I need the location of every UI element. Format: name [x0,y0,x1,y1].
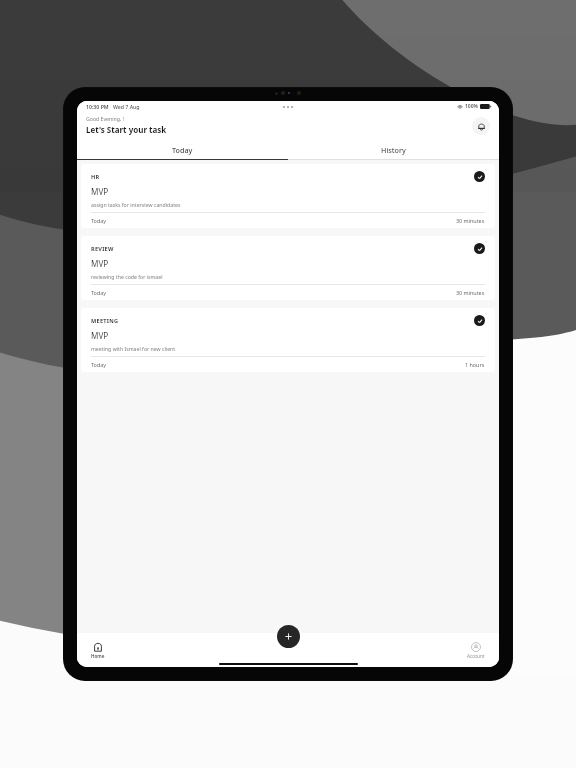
staticText: assign tasks for interview candidates [91,201,181,208]
button[interactable]: MEETING [81,308,495,372]
button[interactable]: HR [81,164,495,228]
button[interactable]: History [288,139,499,160]
staticText: meeting with Ismael for new client [91,345,176,352]
staticText: Today [172,145,193,155]
button[interactable]: Mark complete [474,171,485,182]
staticText: Home [91,653,105,659]
staticText: MEETING [91,317,119,325]
button[interactable]: Today [77,139,288,160]
staticText: 100% [465,103,478,110]
staticText: Today [91,361,106,368]
staticText: REVIEW [91,245,114,253]
staticText: reviewing the code for ismael [91,273,163,280]
button[interactable]: Mark complete [474,315,485,326]
staticText: 10:30 PM [86,103,109,110]
staticText: MVP [91,186,109,197]
button[interactable]: Mark complete [474,243,485,254]
button[interactable]: Account [467,642,485,659]
staticText: 30 minutes [456,217,485,224]
staticText: Today [91,217,106,224]
staticText: Account [467,653,485,659]
staticText: Wed 7 Aug [113,103,140,110]
staticText: Today [91,289,106,296]
button[interactable]: Add task [277,625,300,648]
staticText: HR [91,173,100,181]
staticText: MVP [91,258,109,269]
staticText: History [381,145,406,155]
staticText: 30 minutes [456,289,485,296]
staticText: 1 hours [465,361,485,368]
staticText: Let's Start your task [86,124,167,135]
button[interactable]: Notifications [472,117,490,135]
button[interactable]: REVIEW [81,236,495,300]
staticText: MVP [91,330,109,341]
staticText: Good Evening, ! [86,115,125,122]
button[interactable]: Home [91,642,105,659]
